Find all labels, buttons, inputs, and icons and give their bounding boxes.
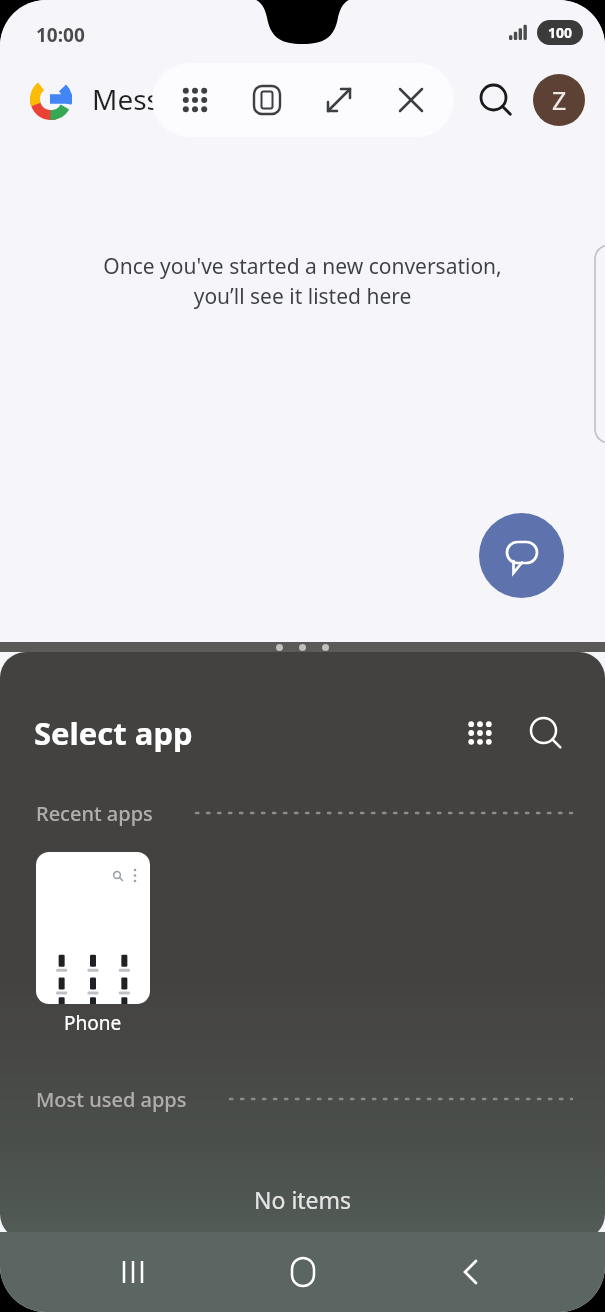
button[interactable]: Start chat bbox=[479, 513, 564, 598]
button[interactable]: Close bbox=[382, 71, 440, 129]
staticText: Messages bbox=[92, 80, 223, 118]
staticText: 10:00 bbox=[36, 22, 85, 48]
button[interactable]: Pop-up view bbox=[238, 71, 296, 129]
staticText: Select app bbox=[34, 712, 193, 754]
staticText: Phone bbox=[64, 1010, 122, 1036]
staticText: Once you've started a new conversation, … bbox=[30, 252, 575, 310]
button[interactable]: Expand bbox=[310, 71, 368, 129]
button[interactable]: Search bbox=[471, 75, 521, 125]
staticText: Z bbox=[552, 83, 567, 117]
staticText: 100 bbox=[548, 23, 573, 42]
button[interactable] bbox=[36, 852, 150, 1004]
staticText: Most used apps bbox=[36, 1086, 187, 1113]
button[interactable]: Search apps bbox=[521, 708, 571, 758]
button[interactable]: All apps bbox=[455, 708, 505, 758]
staticText: No items bbox=[254, 1184, 352, 1215]
button[interactable]: Apps bbox=[166, 71, 224, 129]
button[interactable]: Home bbox=[266, 1235, 340, 1309]
staticText: Recent apps bbox=[36, 800, 153, 827]
button[interactable]: Recents bbox=[96, 1235, 170, 1309]
button[interactable]: Account bbox=[533, 74, 585, 126]
button[interactable]: Back bbox=[435, 1235, 509, 1309]
